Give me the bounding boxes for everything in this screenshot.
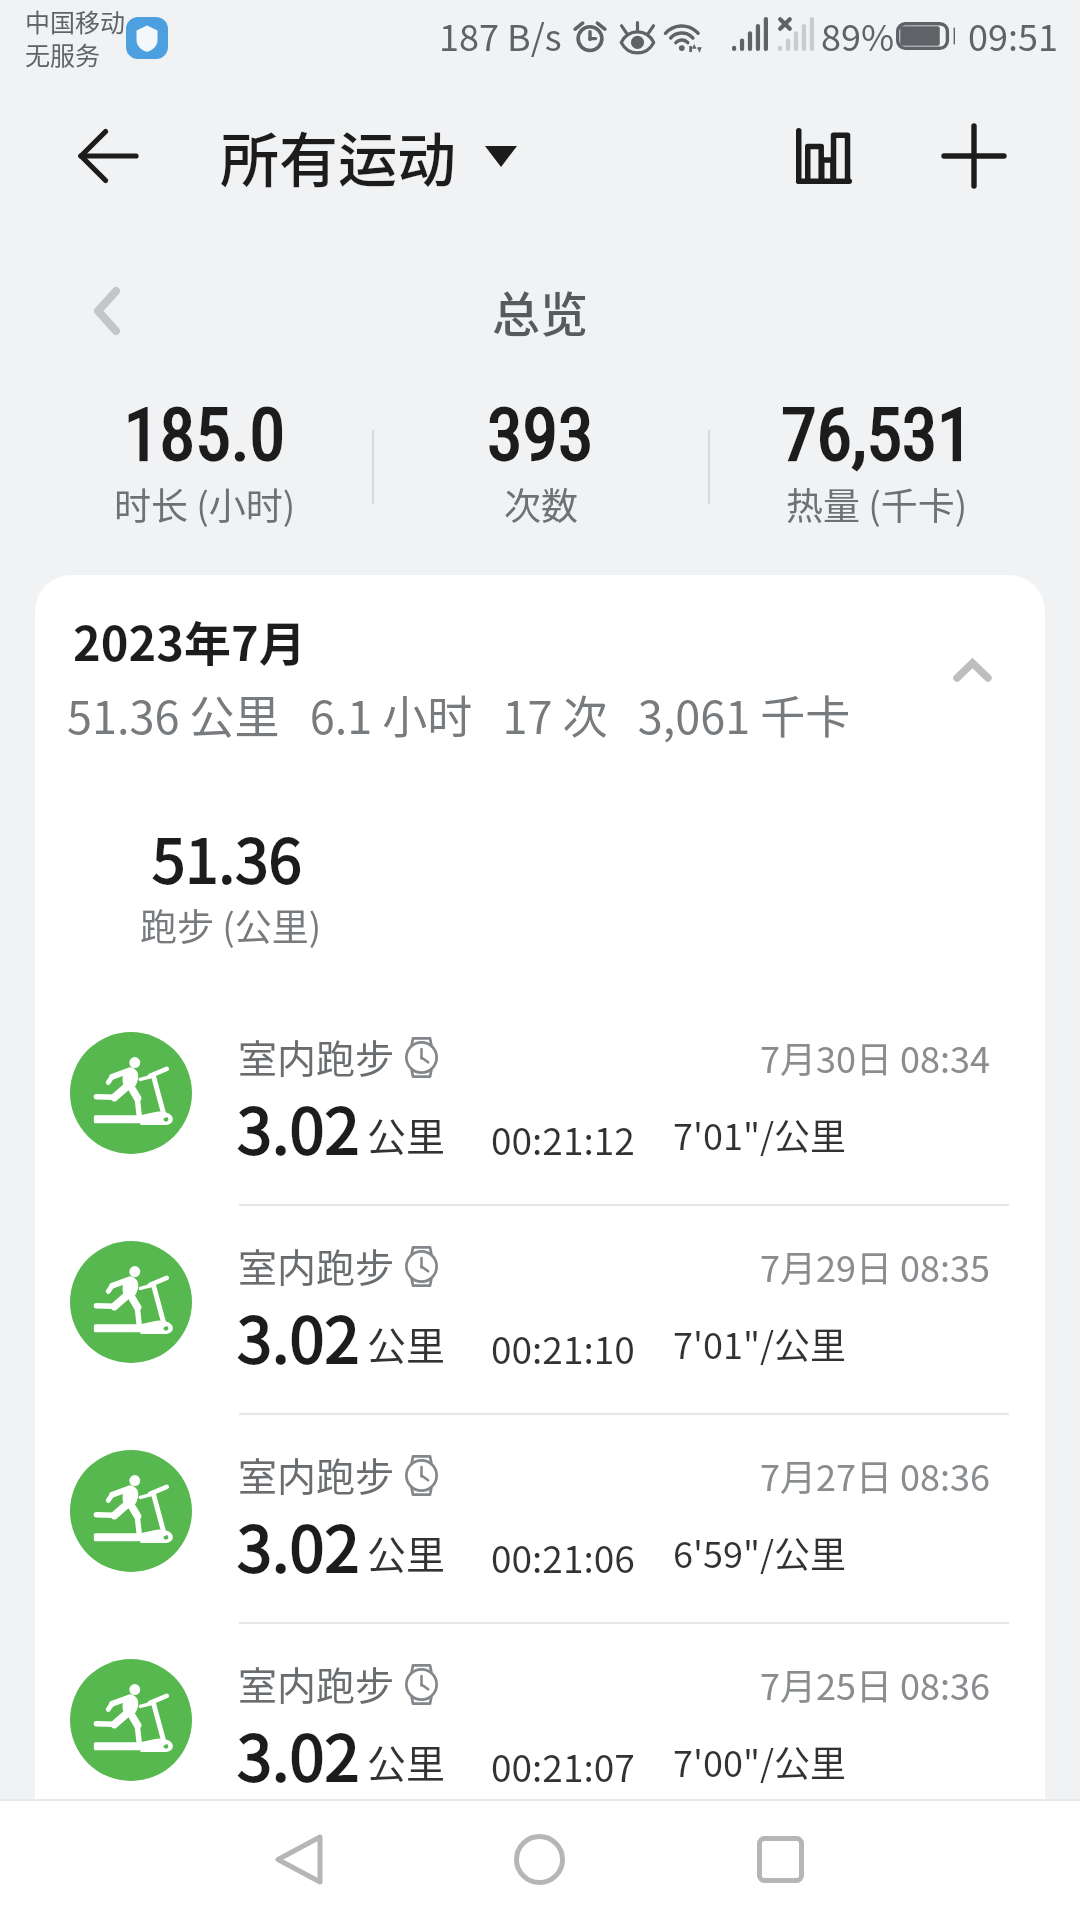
staticText: 3.02: [237, 1290, 360, 1381]
button[interactable]: Add: [926, 112, 1022, 200]
staticText: 09:51: [968, 9, 1058, 61]
button[interactable]: 185.0: [37, 393, 373, 531]
button[interactable]: Collapse: [929, 627, 1015, 713]
button[interactable]: 室内跑步: [35, 1622, 1045, 1799]
staticText: 7'01"/公里: [673, 1317, 847, 1369]
staticText: 热量 (千卡): [786, 477, 968, 531]
staticText: 7月25日 08:36: [760, 1658, 990, 1710]
staticText: 室内跑步: [238, 1028, 395, 1084]
button[interactable]: Back: [238, 1799, 360, 1920]
staticText: 185.0: [124, 393, 286, 477]
button[interactable]: Back: [62, 116, 154, 196]
staticText: 393: [487, 393, 594, 477]
staticText: 187 B/s: [439, 9, 562, 61]
staticText: 7'01"/公里: [673, 1108, 847, 1160]
staticText: 89%: [821, 9, 895, 61]
staticText: 7'00"/公里: [673, 1735, 847, 1787]
button[interactable]: 393: [372, 393, 708, 531]
staticText: 中国移动: [25, 3, 126, 39]
staticText: 公里: [367, 1733, 446, 1789]
staticText: 7月30日 08:34: [760, 1031, 990, 1083]
staticText: 公里: [367, 1315, 446, 1371]
staticText: 室内跑步: [238, 1655, 395, 1711]
staticText: 公里: [367, 1106, 446, 1162]
staticText: 51.36: [152, 813, 302, 900]
staticText: 所有运动: [220, 114, 457, 199]
button[interactable]: Home: [478, 1799, 600, 1920]
staticText: 时长 (小时): [114, 477, 296, 531]
staticText: 6'59"/公里: [673, 1526, 847, 1578]
staticText: 7月27日 08:36: [760, 1449, 990, 1501]
staticText: 00:21:10: [491, 1321, 635, 1375]
staticText: 无服务: [25, 36, 101, 72]
staticText: 3.02: [237, 1081, 360, 1172]
staticText: 公里: [367, 1524, 446, 1580]
button[interactable]: 所有运动: [220, 108, 517, 204]
button[interactable]: Statistics: [776, 112, 872, 200]
button[interactable]: Previous: [72, 276, 142, 346]
staticText: 2023年7月: [73, 606, 306, 674]
staticText: 7月29日 08:35: [760, 1240, 990, 1292]
button[interactable]: Recents: [719, 1799, 841, 1920]
button[interactable]: 室内跑步: [35, 1204, 1045, 1413]
button[interactable]: 室内跑步: [35, 1413, 1045, 1622]
staticText: 00:21:12: [491, 1112, 635, 1166]
staticText: 76,531: [781, 393, 973, 477]
staticText: 00:21:07: [491, 1739, 635, 1793]
staticText: 00:21:06: [491, 1530, 635, 1584]
staticText: 3.02: [237, 1708, 360, 1799]
button[interactable]: 76,531: [709, 393, 1045, 531]
staticText: 室内跑步: [238, 1446, 395, 1502]
staticText: 3.02: [237, 1499, 360, 1590]
staticText: 次数: [504, 477, 578, 531]
staticText: 室内跑步: [238, 1237, 395, 1293]
staticText: 总览: [492, 276, 589, 346]
staticText: 跑步 (公里): [140, 898, 322, 952]
button[interactable]: 室内跑步: [35, 995, 1045, 1204]
staticText: 51.36 公里 6.1 小时 17 次 3,061 千卡: [67, 682, 851, 747]
